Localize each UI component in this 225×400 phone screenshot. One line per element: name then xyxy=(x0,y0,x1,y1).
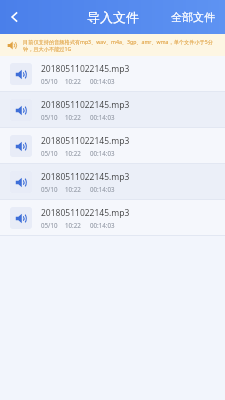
staticText: 05/10 xyxy=(41,221,58,229)
staticText: 10:22 xyxy=(65,149,81,157)
staticText: 00:14:03 xyxy=(90,113,115,121)
staticText: 00:14:03 xyxy=(90,149,115,157)
button[interactable]: 20180511022145.mp3 xyxy=(0,92,225,127)
button[interactable]: Back xyxy=(0,2,30,32)
button[interactable]: 20180511022145.mp3 xyxy=(0,200,225,235)
staticText: 20180511022145.mp3 xyxy=(41,99,130,111)
staticText: 20180511022145.mp3 xyxy=(41,63,130,75)
staticText: 00:14:03 xyxy=(90,77,115,85)
button[interactable]: 全部文件 xyxy=(161,4,225,30)
staticText: 05/10 xyxy=(41,113,58,121)
button[interactable]: 20180511022145.mp3 xyxy=(0,128,225,163)
staticText: 目前仅支持的音频格式有mp3、wav、m4a、3gp、amr、wma，单个文件小… xyxy=(23,38,220,52)
staticText: 20180511022145.mp3 xyxy=(41,135,130,147)
staticText: 00:14:03 xyxy=(90,185,115,193)
staticText: 10:22 xyxy=(65,221,81,229)
button[interactable]: 20180511022145.mp3 xyxy=(0,56,225,91)
staticText: 20180511022145.mp3 xyxy=(41,207,130,219)
staticText: 10:22 xyxy=(65,113,81,121)
staticText: 05/10 xyxy=(41,149,58,157)
staticText: 全部文件 xyxy=(171,10,215,24)
staticText: 20180511022145.mp3 xyxy=(41,171,130,183)
staticText: 10:22 xyxy=(65,77,81,85)
staticText: 00:14:03 xyxy=(90,221,115,229)
staticText: 10:22 xyxy=(65,185,81,193)
staticText: 05/10 xyxy=(41,185,58,193)
staticText: 05/10 xyxy=(41,77,58,85)
staticText: 导入文件 xyxy=(87,9,139,25)
button[interactable]: 20180511022145.mp3 xyxy=(0,164,225,199)
